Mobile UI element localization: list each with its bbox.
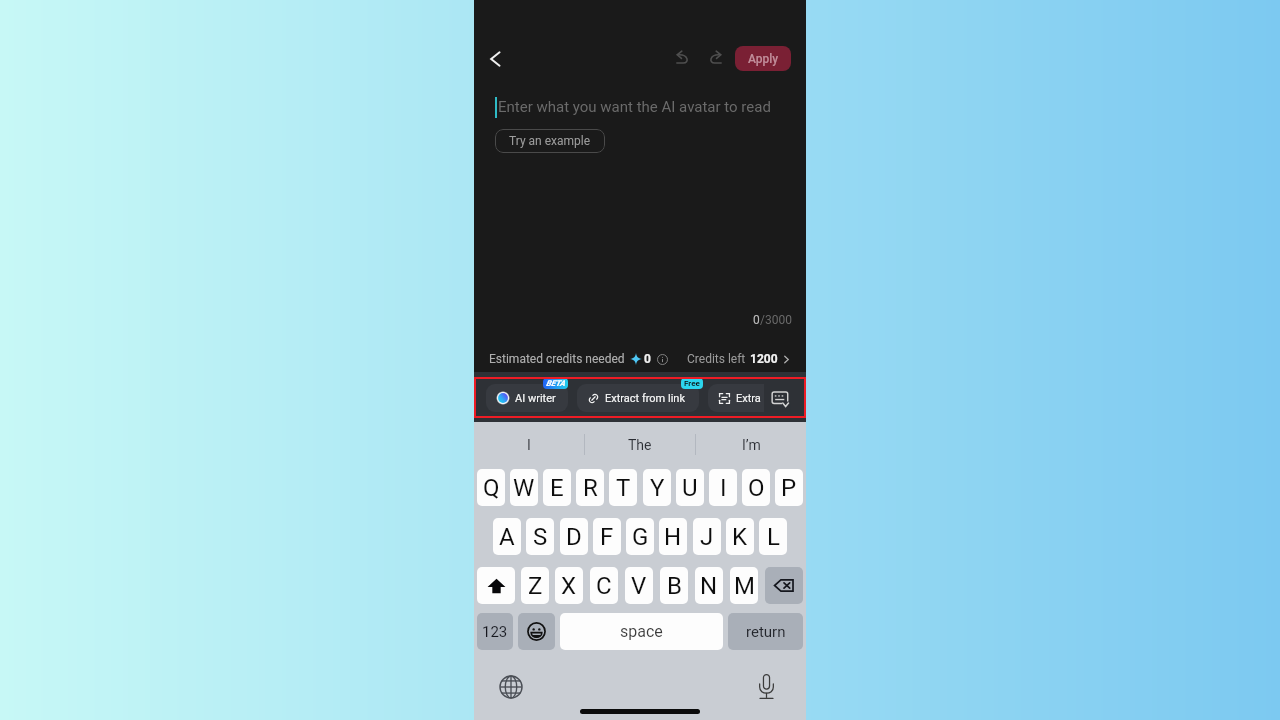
button[interactable]: I	[709, 469, 737, 506]
button[interactable]: Hide keyboard	[769, 387, 791, 409]
staticText: H	[664, 523, 682, 551]
button[interactable]: D	[560, 518, 588, 555]
staticText: 0	[753, 313, 760, 327]
button[interactable]: Z	[521, 567, 549, 604]
staticText: space	[620, 622, 663, 641]
staticText: BETA	[546, 379, 565, 388]
staticText: I	[720, 474, 727, 502]
staticText: C	[596, 572, 612, 600]
button[interactable]: return	[728, 613, 803, 650]
button[interactable]: S	[526, 518, 554, 555]
button[interactable]: Apply	[735, 46, 791, 71]
staticText: F	[600, 523, 614, 551]
staticText: Y	[650, 474, 665, 502]
button[interactable]: N	[695, 567, 723, 604]
staticText: Credits left	[687, 352, 746, 366]
button[interactable]: Redo	[701, 45, 727, 71]
staticText: /3000	[760, 313, 792, 327]
button[interactable]: Undo	[670, 45, 696, 71]
staticText: R	[583, 474, 598, 502]
staticText: 0	[644, 352, 651, 366]
button[interactable]: B	[660, 567, 688, 604]
staticText: S	[533, 523, 548, 551]
button[interactable]: Q	[477, 469, 505, 506]
staticText: 1200	[750, 352, 778, 366]
button[interactable]: Dictate	[752, 673, 780, 701]
button[interactable]: Credits left	[687, 352, 792, 366]
button[interactable]: Back	[481, 45, 508, 72]
staticText: V	[631, 572, 647, 600]
staticText: U	[682, 474, 698, 502]
button[interactable]: O	[742, 469, 770, 506]
staticText: I’m	[742, 437, 761, 453]
button[interactable]: T	[609, 469, 637, 506]
staticText: Try an example	[509, 134, 591, 148]
staticText: The	[628, 437, 652, 453]
staticText: D	[566, 523, 582, 551]
staticText: Estimated credits needed	[489, 352, 625, 366]
button[interactable]: I	[474, 422, 584, 467]
button[interactable]: Emoji	[518, 613, 555, 650]
staticText: M	[734, 572, 755, 600]
staticText: Q	[483, 474, 500, 502]
button[interactable]: Extra	[708, 384, 764, 412]
button[interactable]: W	[510, 469, 538, 506]
button[interactable]: E	[543, 469, 571, 506]
button[interactable]: V	[625, 567, 653, 604]
button[interactable]: G	[626, 518, 654, 555]
button[interactable]: X	[555, 567, 583, 604]
staticText: A	[499, 523, 515, 551]
staticText: O	[748, 474, 765, 502]
button[interactable]: Try an example	[495, 129, 605, 153]
staticText: J	[700, 523, 714, 551]
button[interactable]: Extract from link	[577, 384, 699, 412]
staticText: Extract from link	[605, 392, 685, 405]
button[interactable]: A	[493, 518, 521, 555]
button[interactable]: L	[759, 518, 787, 555]
button[interactable]: space	[560, 613, 723, 650]
button[interactable]: C	[590, 567, 618, 604]
staticText: K	[732, 523, 748, 551]
button[interactable]: F	[593, 518, 621, 555]
button[interactable]: 123	[477, 613, 513, 650]
button[interactable]: R	[576, 469, 604, 506]
button[interactable]: K	[726, 518, 754, 555]
staticText: W	[513, 474, 535, 502]
staticText: G	[632, 523, 649, 551]
button[interactable]: P	[775, 469, 803, 506]
staticText: E	[550, 474, 564, 502]
staticText: return	[746, 623, 786, 641]
staticText: 123	[482, 623, 508, 641]
staticText: X	[561, 572, 577, 600]
staticText: T	[616, 474, 631, 502]
button[interactable]: I’m	[696, 422, 806, 467]
staticText: B	[667, 572, 682, 600]
staticText: Extra	[736, 392, 761, 405]
staticText: Free	[684, 379, 700, 388]
button[interactable]: Y	[643, 469, 671, 506]
staticText: Enter what you want the AI avatar to rea…	[498, 98, 771, 116]
button[interactable]: Backspace	[765, 567, 803, 604]
staticText: I	[527, 437, 531, 453]
button[interactable]: Change keyboard	[497, 673, 525, 701]
staticText: L	[767, 523, 780, 551]
button[interactable]: H	[659, 518, 687, 555]
staticText: P	[781, 474, 797, 502]
button[interactable]: AI writer	[486, 384, 568, 412]
button[interactable]: The	[585, 422, 695, 467]
staticText: AI writer	[515, 392, 556, 405]
button[interactable]: U	[676, 469, 704, 506]
button[interactable]: Shift	[477, 567, 515, 604]
staticText: Apply	[748, 52, 779, 66]
button[interactable]: M	[730, 567, 758, 604]
staticText: N	[700, 572, 718, 600]
button[interactable]: J	[693, 518, 721, 555]
staticText: Z	[528, 572, 543, 600]
button[interactable]: Info	[655, 352, 669, 366]
